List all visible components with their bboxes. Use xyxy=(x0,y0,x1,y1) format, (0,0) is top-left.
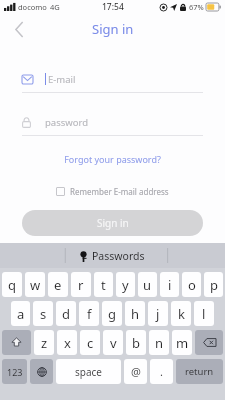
button[interactable]: Sign in xyxy=(22,210,203,236)
button[interactable]: Remember E-mail address xyxy=(52,184,173,199)
staticText: Sign in xyxy=(97,216,129,230)
staticText: return xyxy=(185,365,214,378)
staticText: password xyxy=(45,116,89,129)
staticText: space xyxy=(75,365,102,379)
staticText: u xyxy=(143,276,152,294)
button[interactable]: space xyxy=(56,359,121,384)
button[interactable]: z xyxy=(34,330,54,355)
button[interactable]: q xyxy=(2,272,22,297)
staticText: z xyxy=(41,334,48,352)
staticText: 4G xyxy=(50,2,60,12)
staticText: @ xyxy=(131,364,141,379)
staticText: Remember E-mail address xyxy=(70,186,169,197)
button[interactable]: Back xyxy=(6,16,32,42)
button[interactable]: c xyxy=(80,330,100,355)
button[interactable]: 123 xyxy=(2,359,27,384)
staticText: n xyxy=(155,334,164,352)
staticText: Sign in xyxy=(92,20,134,38)
button[interactable]: n xyxy=(149,330,169,355)
staticText: c xyxy=(87,334,94,352)
button[interactable]: l xyxy=(194,301,214,326)
staticText: d xyxy=(62,305,70,323)
button[interactable]: w xyxy=(25,272,45,297)
staticText: 17:54 xyxy=(102,1,124,13)
button[interactable]: f xyxy=(79,301,99,326)
staticText: w xyxy=(30,276,41,294)
staticText: docomo xyxy=(18,2,47,12)
button[interactable]: d xyxy=(56,301,76,326)
staticText: r xyxy=(78,276,84,294)
button[interactable]: a xyxy=(11,301,30,326)
button[interactable]: h xyxy=(125,301,145,326)
button[interactable]: i xyxy=(160,272,179,297)
staticText: g xyxy=(108,305,116,323)
button[interactable]: s xyxy=(33,301,53,326)
button[interactable]: Shift xyxy=(2,330,31,355)
staticText: o xyxy=(188,276,196,294)
staticText: 123 xyxy=(7,366,23,378)
button[interactable]: b xyxy=(126,330,146,355)
button[interactable]: e xyxy=(48,272,68,297)
staticText: p xyxy=(210,276,218,294)
button[interactable]: Change keyboard xyxy=(30,359,53,384)
staticText: . xyxy=(160,364,163,379)
staticText: i xyxy=(168,276,172,294)
button[interactable]: Backspace xyxy=(195,330,223,355)
staticText: f xyxy=(87,305,92,323)
button[interactable]: . xyxy=(150,359,173,384)
staticText: Forgot your password? xyxy=(64,153,161,165)
staticText: k xyxy=(178,305,185,323)
staticText: l xyxy=(202,305,206,323)
button[interactable]: x xyxy=(57,330,77,355)
staticText: E-mail xyxy=(48,73,76,86)
button[interactable]: v xyxy=(103,330,123,355)
staticText: t xyxy=(101,276,106,294)
staticText: b xyxy=(132,334,140,352)
staticText: a xyxy=(17,305,25,323)
button[interactable]: Passwords xyxy=(80,249,145,263)
staticText: Passwords xyxy=(92,249,145,263)
button[interactable]: @ xyxy=(124,359,147,384)
staticText: v xyxy=(110,334,117,352)
staticText: j xyxy=(156,305,160,323)
staticText: y xyxy=(122,276,129,294)
staticText: x xyxy=(64,334,71,352)
staticText: m xyxy=(176,334,189,352)
button[interactable]: u xyxy=(138,272,157,297)
button[interactable]: Forgot your password? xyxy=(58,150,167,168)
staticText: q xyxy=(8,276,16,294)
button[interactable]: t xyxy=(94,272,113,297)
button[interactable]: p xyxy=(204,272,223,297)
button[interactable]: o xyxy=(182,272,201,297)
button[interactable]: password xyxy=(22,109,203,135)
button[interactable]: j xyxy=(148,301,168,326)
button[interactable]: m xyxy=(172,330,192,355)
staticText: 67% xyxy=(189,2,204,12)
staticText: s xyxy=(40,305,47,323)
button[interactable]: y xyxy=(116,272,135,297)
staticText: e xyxy=(54,276,62,294)
button[interactable]: g xyxy=(102,301,122,326)
button[interactable]: E-mail xyxy=(22,66,203,92)
button[interactable]: return xyxy=(176,359,223,384)
button[interactable]: r xyxy=(71,272,91,297)
button[interactable]: k xyxy=(171,301,191,326)
staticText: h xyxy=(131,305,140,323)
